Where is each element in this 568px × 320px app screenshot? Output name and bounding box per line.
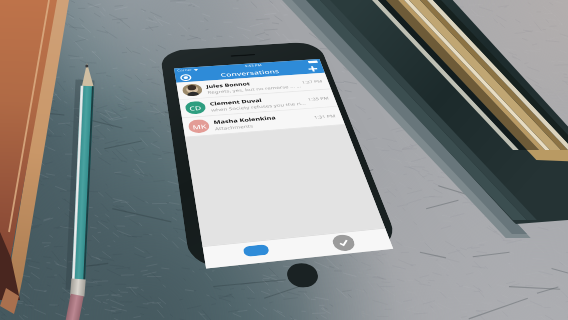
button[interactable]: CD: [179, 89, 338, 118]
staticText: Regrets, yes, but no remorse … not even…: [207, 83, 304, 95]
button[interactable]: Done: [330, 234, 357, 252]
staticText: 5:53 PM: [244, 63, 262, 68]
button[interactable]: MK: [182, 106, 345, 137]
staticText: 1:31 PM: [313, 113, 337, 120]
staticText: Conversations: [220, 68, 280, 79]
staticText: Clement Duval: [209, 97, 262, 107]
staticText: Carrier: [177, 68, 193, 73]
button[interactable]: Profile: [180, 74, 192, 81]
staticText: CD: [189, 104, 202, 112]
staticText: 1:37 PM: [301, 79, 323, 85]
button[interactable]: Jules Bonnot: [176, 73, 331, 100]
button[interactable]: New conversation: [306, 65, 320, 73]
staticText: Jules Bonnot: [206, 81, 251, 89]
staticText: when Society refuses you the right to ex…: [210, 100, 310, 113]
button[interactable]: Home: [284, 262, 321, 289]
button[interactable]: Compose: [242, 244, 270, 257]
staticText: 1:35 PM: [307, 96, 330, 102]
staticText: Masha Kolenkina: [213, 114, 277, 125]
staticText: Attachments: [214, 123, 254, 132]
staticText: MK: [192, 122, 207, 131]
